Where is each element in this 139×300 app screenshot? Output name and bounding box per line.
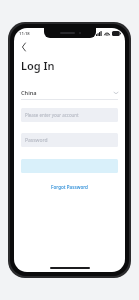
button[interactable]: China: [21, 86, 118, 100]
staticText: China: [21, 89, 37, 97]
button[interactable]: Please enter your account: [21, 108, 118, 122]
staticText: Forgot Password: [51, 184, 88, 190]
button[interactable]: Password: [21, 133, 118, 147]
staticText: Please enter your account: [25, 112, 79, 118]
staticText: Log In: [21, 58, 55, 73]
button[interactable]: Back: [17, 40, 31, 54]
button[interactable]: Forgot Password: [47, 182, 92, 192]
staticText: Password: [25, 137, 48, 144]
staticText: 11:18: [19, 31, 30, 37]
